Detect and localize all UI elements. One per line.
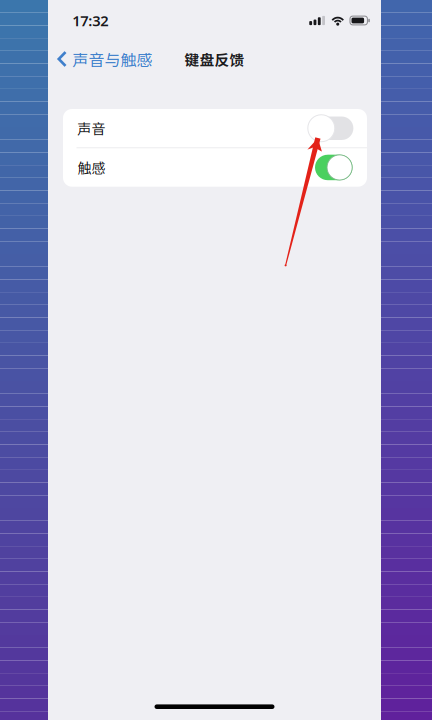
button[interactable]: 触感 [63, 148, 367, 187]
staticText: 17:32 [72, 11, 108, 30]
button[interactable]: 声音 [63, 109, 367, 147]
button[interactable]: 声音与触感 [48, 44, 160, 74]
staticText: 声音 [77, 118, 105, 138]
staticText: 声音与触感 [72, 47, 152, 71]
staticText: 触感 [77, 157, 105, 178]
staticText: 键盘反馈 [184, 48, 244, 70]
